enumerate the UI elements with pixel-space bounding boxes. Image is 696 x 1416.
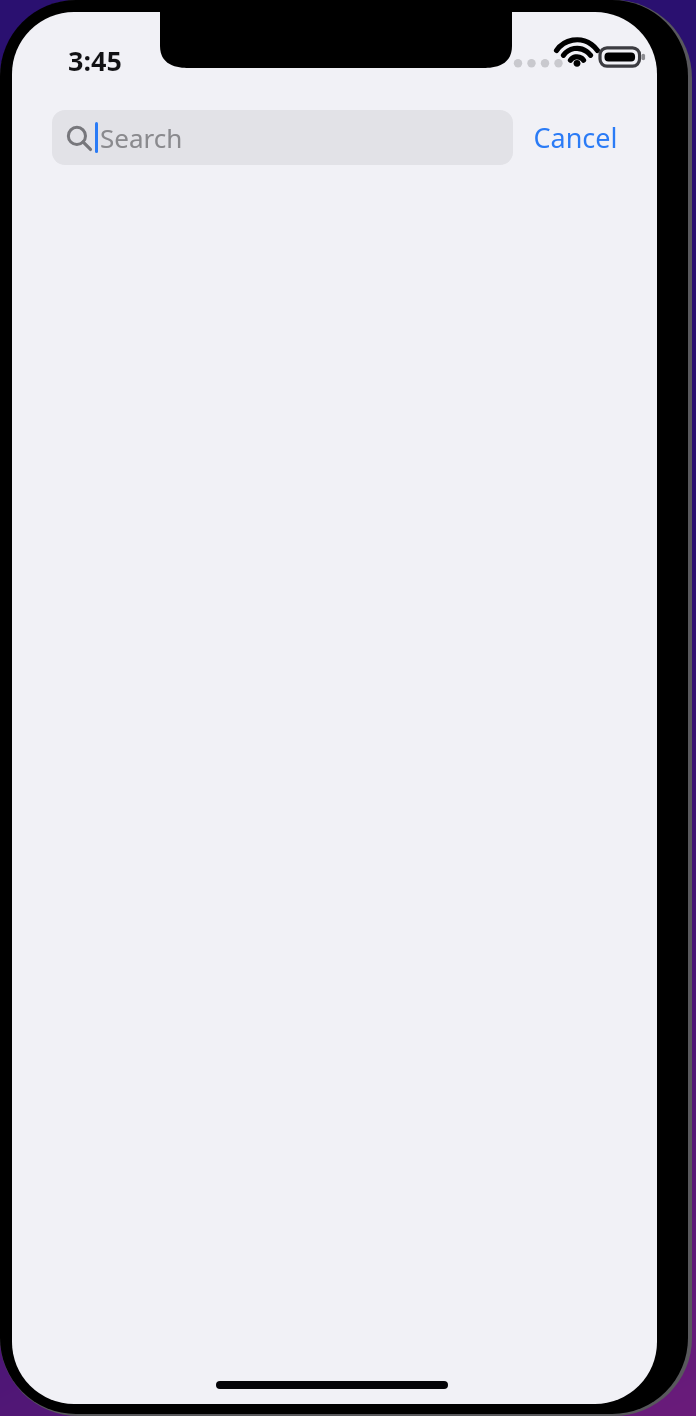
staticText: 3:45 — [68, 42, 122, 79]
staticText: Cancel — [533, 119, 618, 156]
button[interactable]: Cancel — [521, 110, 630, 165]
button[interactable]: Search — [52, 110, 513, 165]
staticText: Search — [100, 120, 183, 155]
